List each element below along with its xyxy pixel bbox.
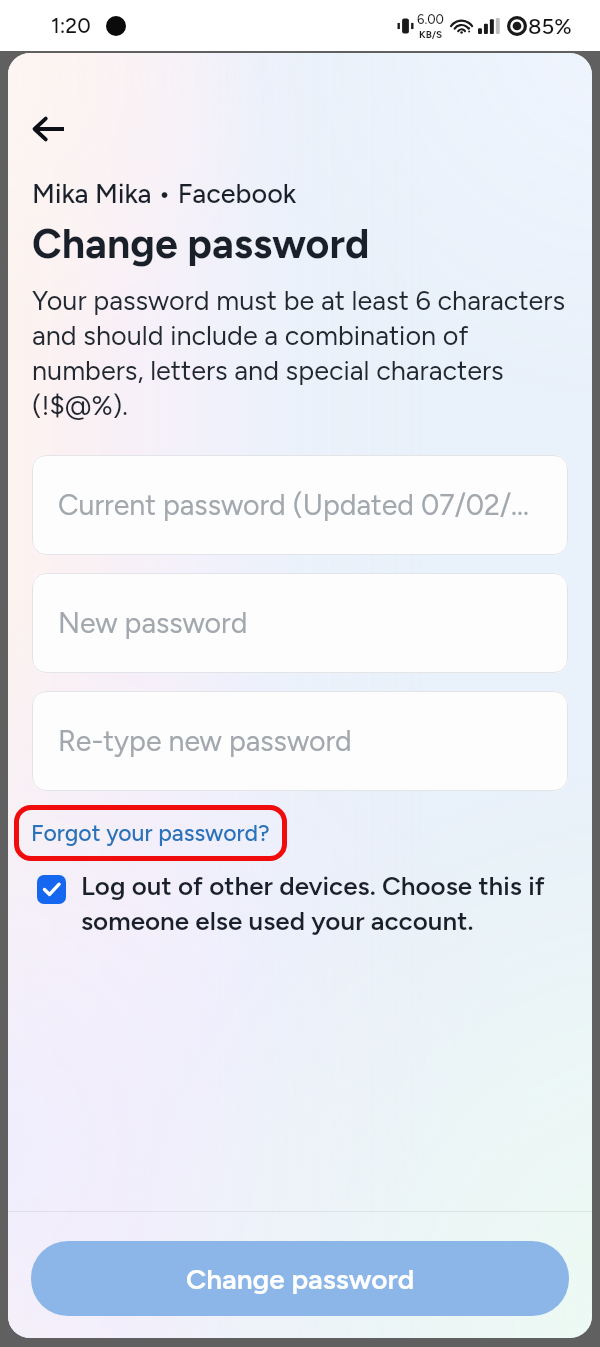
- button[interactable]: Back: [26, 107, 70, 151]
- staticText: Change password: [32, 219, 370, 268]
- staticText: 1:20: [51, 13, 91, 38]
- staticText: Forgot your password?: [31, 819, 270, 847]
- staticText: New password: [58, 606, 248, 640]
- button[interactable]: Log out of other devices. Choose this if…: [37, 870, 556, 936]
- staticText: Your password must be at least 6 charact…: [32, 284, 574, 421]
- staticText: Current password (Updated 07/02/...: [58, 488, 529, 522]
- staticText: 85%: [528, 13, 572, 39]
- staticText: Log out of other devices. Choose this if…: [81, 870, 556, 936]
- staticText: Change password: [186, 1262, 415, 1296]
- staticText: KB/S: [419, 28, 443, 40]
- button[interactable]: Re-type new password: [32, 691, 568, 791]
- staticText: 6.00: [417, 12, 444, 28]
- button[interactable]: Current password (Updated 07/02/...: [32, 455, 568, 555]
- button[interactable]: Forgot your password?: [14, 805, 287, 861]
- staticText: Re-type new password: [58, 724, 352, 758]
- button[interactable]: Change password: [31, 1241, 569, 1316]
- button[interactable]: New password: [32, 573, 568, 673]
- staticText: Mika Mika • Facebook: [32, 177, 297, 209]
